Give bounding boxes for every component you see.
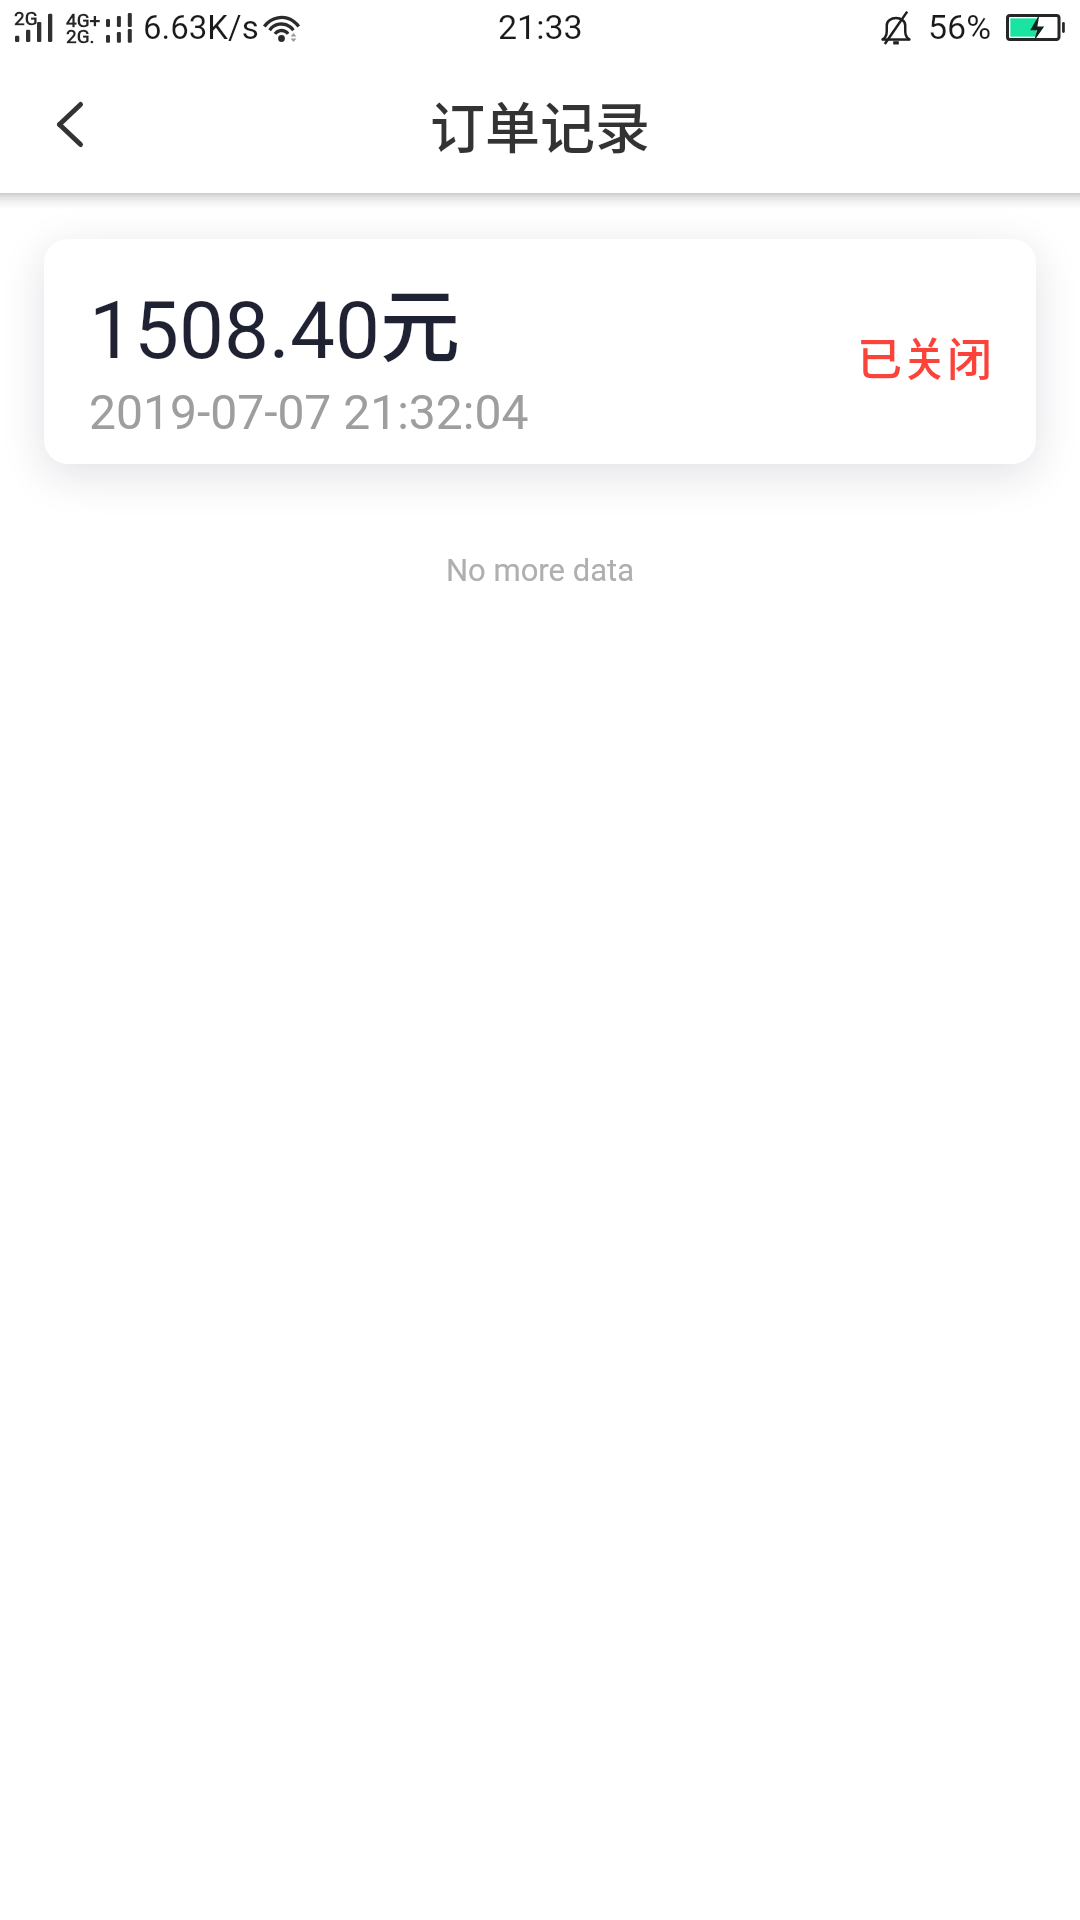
button[interactable]: Back (0, 62, 126, 193)
staticText: No more data (0, 552, 1080, 588)
button[interactable]: 1508.40 (44, 239, 1036, 464)
staticText: 订单记录 (430, 84, 651, 164)
staticText: 4G+ (66, 9, 101, 31)
staticText: 元 (380, 262, 460, 378)
staticText: 1508.40 (89, 284, 380, 378)
staticText: 6.63K/s (143, 8, 259, 47)
staticText: 2G (14, 7, 38, 29)
staticText: 已关闭 (857, 324, 993, 389)
staticText: 2G. (66, 25, 95, 47)
staticText: 21:33 (498, 7, 583, 47)
staticText: 56% (928, 7, 992, 47)
staticText: 2019-07-07 21:32:04 (89, 384, 529, 440)
